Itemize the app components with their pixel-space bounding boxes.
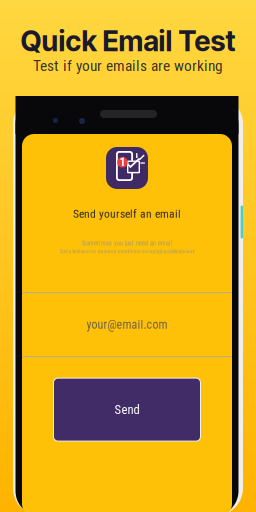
button[interactable]: your@email.com — [22, 293, 232, 356]
staticText: Test if your emails are working — [33, 57, 223, 75]
button[interactable]: Send — [53, 378, 200, 441]
staticText: Send yourself an email — [73, 207, 181, 221]
staticText: Send — [114, 402, 139, 417]
staticText: 1 — [119, 155, 125, 169]
staticText: Sometimes you just need an email — [82, 239, 172, 248]
staticText: your@email.com — [86, 318, 167, 332]
staticText: Get a test sent on demand email from nor… — [59, 248, 194, 255]
staticText: Quick Email Test — [20, 24, 235, 58]
